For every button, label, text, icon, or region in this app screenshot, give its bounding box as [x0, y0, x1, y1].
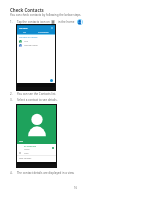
staticText: 2. You can see the Contacts list.: [10, 92, 57, 96]
staticText: Work: [24, 152, 29, 154]
staticText: Mobile: [24, 148, 30, 150]
staticText: Michael Smith: [24, 44, 38, 47]
button[interactable]: Ann: [17, 39, 55, 43]
staticText: 16: [74, 186, 78, 190]
staticText: Contacts: [19, 27, 28, 30]
staticText: Ann: [24, 40, 28, 43]
button[interactable]: Add contact: [50, 79, 53, 82]
staticText: ALL: [23, 31, 27, 33]
staticText: Tap the contacts icon on: [17, 20, 50, 24]
staticText: 4. The contact details are displayed in …: [10, 171, 75, 175]
staticText: in the home: [58, 20, 75, 24]
staticText: 0123456789: [24, 145, 36, 148]
button[interactable]: Michael Smith: [17, 43, 55, 47]
staticText: FAVOURITES: [38, 31, 49, 33]
staticText: Ann: [19, 140, 23, 143]
staticText: Contacts on device: [19, 36, 38, 39]
staticText: 1.: [10, 20, 13, 24]
staticText: Check Contacts: [10, 7, 44, 13]
staticText: Send message: [19, 157, 32, 159]
staticText: 3. Select a contact to see details.: [10, 98, 58, 102]
staticText: You can check contacts by following the …: [10, 13, 82, 17]
button[interactable]: 0123456789: [17, 145, 56, 150]
button[interactable]: Work: [17, 151, 56, 155]
